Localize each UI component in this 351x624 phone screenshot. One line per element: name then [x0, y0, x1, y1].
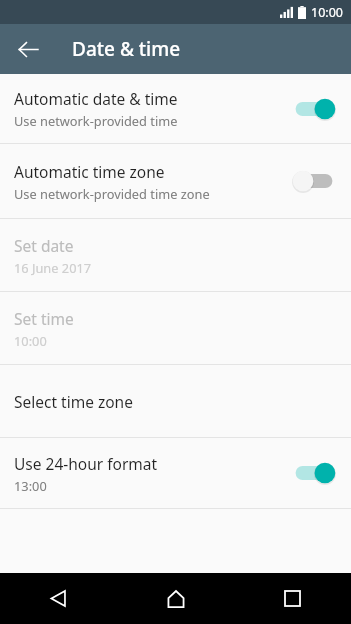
- button[interactable]: Set time: [0, 292, 351, 364]
- button[interactable]: Home: [117, 573, 234, 624]
- button[interactable]: On: [291, 95, 337, 123]
- button[interactable]: On: [291, 459, 337, 487]
- staticText: Date & time: [72, 36, 181, 62]
- button[interactable]: Select time zone: [0, 365, 351, 437]
- staticText: 10:00: [311, 4, 343, 21]
- button[interactable]: Back: [8, 29, 48, 69]
- staticText: Automatic date & time: [14, 88, 178, 109]
- staticText: Use network-provided time: [14, 112, 178, 129]
- button[interactable]: Back: [0, 573, 117, 624]
- staticText: Set date: [14, 235, 74, 256]
- button[interactable]: Off: [291, 167, 337, 195]
- staticText: Use 24-hour format: [14, 453, 158, 474]
- staticText: Select time zone: [14, 391, 133, 412]
- staticText: Set time: [14, 308, 74, 329]
- button[interactable]: Set date: [0, 219, 351, 291]
- staticText: 13:00: [14, 477, 47, 494]
- button[interactable]: Recent apps: [234, 573, 351, 624]
- staticText: Use network-provided time zone: [14, 185, 210, 202]
- button[interactable]: Use 24-hour format: [0, 438, 351, 508]
- button[interactable]: Automatic date & time: [0, 74, 351, 143]
- staticText: 16 June 2017: [14, 259, 92, 276]
- staticText: 10:00: [14, 332, 47, 349]
- staticText: Automatic time zone: [14, 161, 165, 182]
- button[interactable]: Automatic time zone: [0, 144, 351, 218]
